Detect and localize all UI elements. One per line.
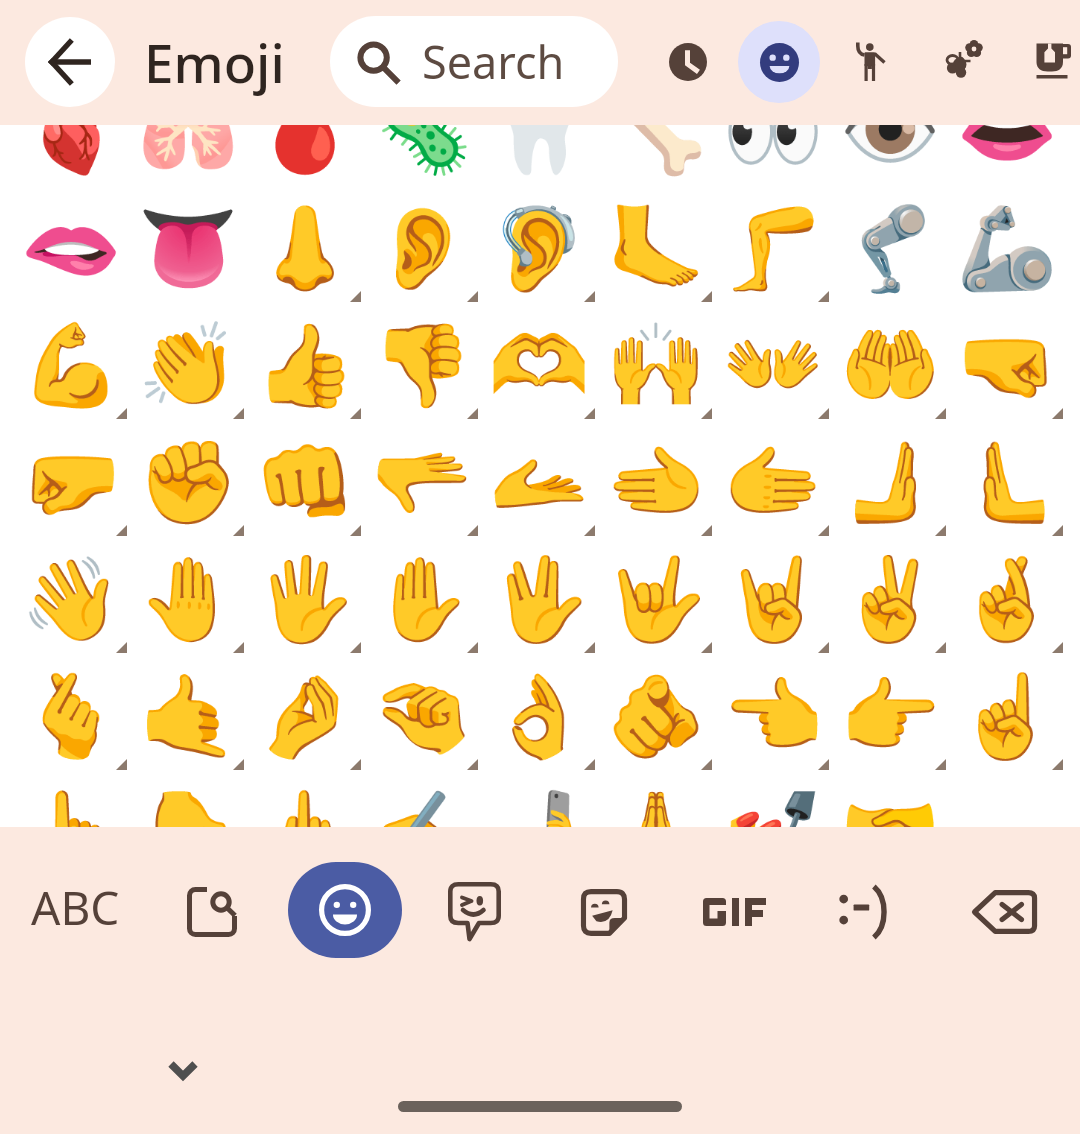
button[interactable]: 🤟	[597, 541, 714, 658]
button[interactable]: GIF	[680, 864, 788, 960]
button[interactable]: 🫶	[480, 307, 597, 424]
button[interactable]: ☝️	[948, 658, 1065, 775]
button[interactable]: Backspace	[949, 864, 1057, 960]
button[interactable]: 🦾	[948, 190, 1065, 307]
button[interactable]: 🤳	[480, 775, 597, 827]
button[interactable]: 🦠	[363, 125, 480, 190]
button[interactable]: 👁️	[831, 125, 948, 190]
button[interactable]: 🤘	[714, 541, 831, 658]
button[interactable]: Hide keyboard	[145, 1032, 221, 1108]
button[interactable]: 🦴	[597, 125, 714, 190]
button[interactable]: 🦿	[831, 190, 948, 307]
staticText: Emoji	[144, 26, 285, 98]
button[interactable]: 👌	[480, 658, 597, 775]
button[interactable]: Food and drink	[1014, 22, 1080, 100]
staticText: 🤲	[839, 318, 941, 413]
button[interactable]: 👋	[12, 541, 129, 658]
button[interactable]: 💅	[714, 775, 831, 827]
button[interactable]: 🫸	[831, 424, 948, 541]
button[interactable]: 🤌	[246, 658, 363, 775]
button[interactable]: 🦷	[480, 125, 597, 190]
staticText: 🤏	[371, 669, 473, 764]
staticText: 🤙	[137, 669, 239, 764]
button[interactable]: 👄	[948, 125, 1065, 190]
staticText: ABC	[31, 876, 120, 939]
button[interactable]: 🤞	[948, 541, 1065, 658]
button[interactable]: Emoticons	[810, 864, 918, 960]
staticText: 💪	[20, 318, 122, 413]
button[interactable]: 🫁	[129, 125, 246, 190]
staticText: 🙌	[605, 318, 707, 413]
button[interactable]: 🤲	[831, 307, 948, 424]
button[interactable]: 👀	[714, 125, 831, 190]
button[interactable]: 🤝	[831, 775, 948, 827]
staticText: 🦿	[839, 201, 941, 296]
button[interactable]: 🫳	[363, 424, 480, 541]
button[interactable]: 🫴	[480, 424, 597, 541]
staticText: 🦻	[488, 201, 590, 296]
button[interactable]: 🫷	[948, 424, 1065, 541]
button[interactable]: 🦶	[597, 190, 714, 307]
button[interactable]: 👏	[129, 307, 246, 424]
button[interactable]: Search emoji	[158, 864, 266, 960]
staticText: 🫷	[956, 435, 1058, 530]
button[interactable]: People and body	[832, 22, 910, 100]
button[interactable]: 🖕	[246, 775, 363, 827]
button[interactable]: ✌️	[831, 541, 948, 658]
button[interactable]: 🙌	[597, 307, 714, 424]
staticText: 👊	[254, 435, 356, 530]
button[interactable]: 🤛	[12, 424, 129, 541]
button[interactable]: 🫲	[597, 424, 714, 541]
button[interactable]: 👈	[714, 658, 831, 775]
button[interactable]: 🩸	[246, 125, 363, 190]
button[interactable]: Back	[25, 17, 115, 107]
button[interactable]: 👎	[363, 307, 480, 424]
button[interactable]: Stickers	[550, 864, 658, 960]
button[interactable]: 🫦	[12, 190, 129, 307]
button[interactable]: 👂	[363, 190, 480, 307]
button[interactable]: 🖖	[480, 541, 597, 658]
button[interactable]: Emoji kitchen	[420, 864, 528, 960]
button[interactable]: 👉	[831, 658, 948, 775]
button[interactable]: 👍	[246, 307, 363, 424]
button[interactable]: 🤜	[948, 307, 1065, 424]
button[interactable]: 🫀	[12, 125, 129, 190]
staticText: 👐	[722, 318, 824, 413]
button[interactable]: 👅	[129, 190, 246, 307]
staticText: 🫵	[605, 669, 707, 764]
button[interactable]: Search	[330, 16, 618, 107]
button[interactable]: ✍️	[363, 775, 480, 827]
button[interactable]: Animals and nature	[923, 22, 1001, 100]
button[interactable]: 🦻	[480, 190, 597, 307]
button[interactable]: 🦵	[714, 190, 831, 307]
staticText: 👏	[137, 318, 239, 413]
button[interactable]: 👆	[12, 775, 129, 827]
staticText: ✌️	[839, 552, 941, 647]
button[interactable]: 💪	[12, 307, 129, 424]
button[interactable]: 🤏	[363, 658, 480, 775]
button[interactable]: 🤚	[129, 541, 246, 658]
button[interactable]: 🤙	[129, 658, 246, 775]
staticText: 🤜	[956, 318, 1058, 413]
button[interactable]: Smileys and emotion	[738, 21, 820, 103]
button[interactable]: 🖐️	[246, 541, 363, 658]
button[interactable]: 👊	[246, 424, 363, 541]
button[interactable]: ✋	[363, 541, 480, 658]
staticText: 🤳	[488, 786, 590, 827]
button[interactable]: 🫵	[597, 658, 714, 775]
button[interactable]: 👃	[246, 190, 363, 307]
button[interactable]: ABC	[10, 859, 140, 955]
button[interactable]: 👐	[714, 307, 831, 424]
staticText: 👂	[371, 201, 473, 296]
staticText: 👄	[956, 125, 1058, 179]
button[interactable]: Emoji	[288, 862, 402, 958]
button[interactable]: 🫰	[12, 658, 129, 775]
button[interactable]: 🙏	[597, 775, 714, 827]
staticText: 🫦	[20, 201, 122, 296]
button[interactable]: ✊	[129, 424, 246, 541]
button[interactable]: Recently used	[648, 22, 728, 102]
staticText: ☝️	[956, 669, 1058, 764]
button[interactable]: 🫱	[714, 424, 831, 541]
button[interactable]: 👇	[129, 775, 246, 827]
